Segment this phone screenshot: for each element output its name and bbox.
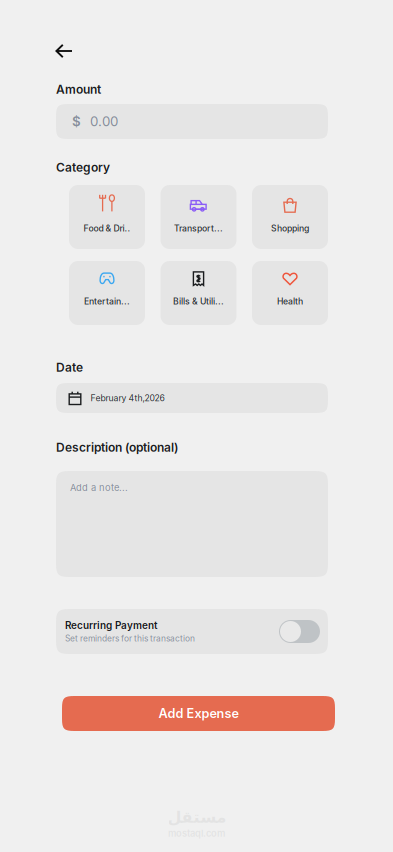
staticText: Health — [277, 296, 303, 306]
button[interactable]: Shopping — [252, 185, 328, 249]
staticText: Bills & Utili... — [173, 296, 224, 306]
staticText: $ — [72, 113, 81, 129]
staticText: Add a note... — [70, 482, 128, 493]
staticText: 0.00 — [90, 113, 118, 129]
staticText: Shopping — [271, 223, 309, 233]
staticText: Add Expense — [158, 706, 238, 721]
staticText: Recurring Payment — [65, 619, 158, 631]
button[interactable]: Bills & Utili... — [160, 261, 236, 325]
button[interactable]: Back — [47, 35, 81, 67]
button[interactable]: Entertain... — [69, 261, 145, 325]
staticText: Set reminders for this transaction — [65, 633, 195, 644]
staticText: Description (optional) — [56, 440, 178, 454]
button[interactable]: Health — [252, 261, 328, 325]
button[interactable]: February 4th,2026 — [56, 383, 328, 413]
button[interactable]: Transport... — [160, 185, 236, 249]
button[interactable]: Food & Dri.. — [69, 185, 145, 249]
staticText: Amount — [56, 82, 101, 96]
staticText: Food & Dri.. — [83, 223, 130, 233]
staticText: مستقل — [167, 808, 226, 827]
button[interactable]: Recurring Payment — [56, 609, 328, 654]
staticText: Entertain... — [84, 296, 130, 306]
staticText: Category — [56, 160, 110, 174]
staticText: February 4th,2026 — [90, 393, 164, 403]
staticText: Transport... — [174, 223, 223, 233]
staticText: mostaql.com — [168, 828, 225, 839]
button[interactable]: Add Expense — [62, 696, 335, 731]
staticText: Date — [56, 360, 83, 374]
